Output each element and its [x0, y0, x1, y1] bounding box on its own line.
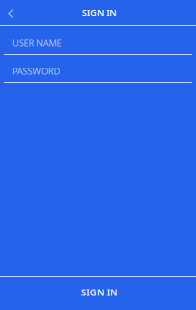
button[interactable]: PASSWORD	[0, 55, 196, 83]
staticText: PASSWORD	[12, 65, 61, 77]
staticText: SIGN IN	[82, 6, 116, 19]
button[interactable]: Back	[0, 0, 22, 25]
button[interactable]: SIGN IN	[0, 277, 196, 310]
button[interactable]: USER NAME	[0, 26, 196, 55]
staticText: SIGN IN	[81, 286, 117, 298]
staticText: USER NAME	[12, 37, 61, 49]
